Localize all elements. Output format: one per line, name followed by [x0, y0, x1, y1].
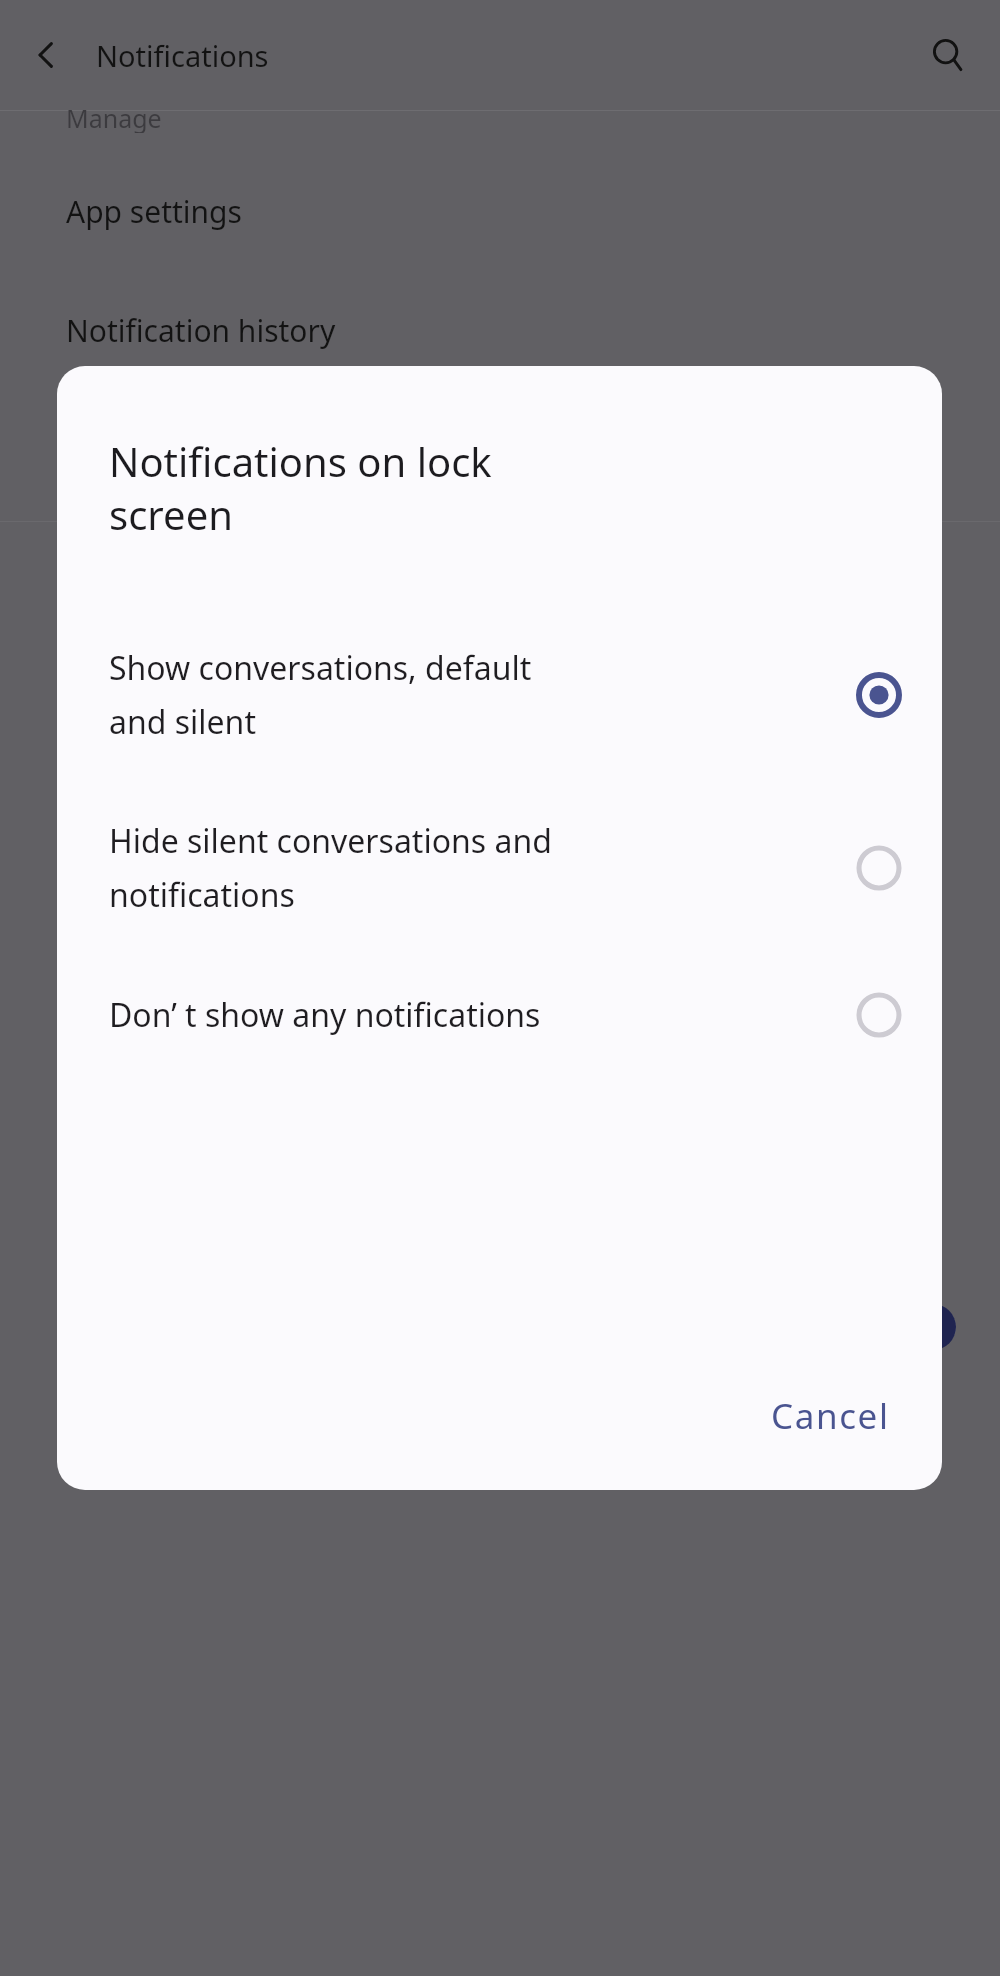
staticText: Manage [66, 101, 162, 133]
button[interactable]: Search [916, 23, 980, 87]
button[interactable]: Hide silent conversations and notificati… [57, 793, 942, 942]
button[interactable]: Cancel [745, 1376, 916, 1456]
staticText: App settings [66, 191, 242, 232]
button[interactable]: Show data information [0, 1282, 1000, 1372]
staticText: Notifications on lock screen [109, 434, 492, 542]
button[interactable]: Notifications on lock screen [0, 1042, 1000, 1083]
button[interactable]: App settings [0, 191, 1000, 232]
staticText: Show conversations, default and silent [109, 646, 828, 743]
staticText: Notifications [96, 36, 269, 75]
button[interactable]: Don’ t show any notifications [57, 966, 942, 1064]
staticText: Don’ t show any notifications [109, 993, 828, 1037]
button[interactable]: Back [14, 23, 78, 87]
staticText: Hide silent conversations and notificati… [109, 819, 828, 916]
button[interactable]: Notification history [0, 310, 1000, 351]
staticText: Notification history [66, 310, 336, 351]
button[interactable]: Show conversations, default and silent [57, 620, 942, 769]
staticText: Cancel [771, 1392, 890, 1440]
